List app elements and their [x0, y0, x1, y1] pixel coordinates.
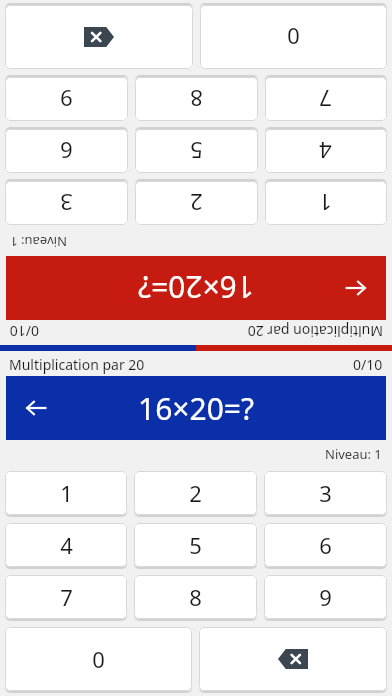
- staticText: 7: [60, 582, 73, 612]
- staticText: 6: [319, 530, 332, 560]
- button[interactable]: 5: [134, 523, 257, 567]
- button[interactable]: 0: [5, 627, 192, 691]
- button[interactable]: 1: [5, 471, 127, 515]
- staticText: 3: [60, 188, 73, 218]
- staticText: 9: [319, 582, 332, 612]
- button[interactable]: 5: [135, 129, 258, 173]
- button[interactable]: 2: [134, 471, 257, 515]
- other: Backspace: [5, 3, 193, 69]
- staticText: 8: [189, 582, 202, 612]
- button[interactable]: 3: [264, 471, 387, 515]
- staticText: 1: [60, 478, 73, 508]
- button[interactable]: [5, 5, 193, 69]
- staticText: 4: [319, 136, 332, 166]
- staticText: 2: [189, 478, 202, 508]
- button[interactable]: 0: [200, 5, 387, 69]
- button[interactable]: 8: [134, 575, 257, 619]
- button[interactable]: 7: [265, 77, 387, 121]
- staticText: Multiplication par 20: [9, 355, 145, 374]
- staticText: 7: [319, 84, 332, 114]
- button[interactable]: 1: [265, 181, 387, 225]
- staticText: 4: [60, 530, 73, 560]
- staticText: 2: [190, 188, 203, 218]
- button[interactable]: Back: [16, 388, 56, 428]
- staticText: 0: [287, 22, 300, 52]
- staticText: 6: [60, 136, 73, 166]
- button[interactable]: [199, 627, 387, 691]
- staticText: 0/10: [353, 355, 383, 374]
- staticText: 8: [190, 84, 203, 114]
- button[interactable]: 2: [135, 181, 258, 225]
- button[interactable]: 7: [5, 575, 127, 619]
- staticText: 3: [319, 478, 332, 508]
- button[interactable]: 6: [264, 523, 387, 567]
- button[interactable]: 16×20=?: [6, 376, 386, 440]
- staticText: 5: [189, 530, 202, 560]
- button[interactable]: 6: [5, 129, 128, 173]
- other: Backspace: [199, 627, 387, 693]
- staticText: 0/10: [9, 322, 39, 341]
- button[interactable]: 9: [5, 77, 128, 121]
- button[interactable]: 4: [265, 129, 387, 173]
- staticText: Multiplication par 20: [247, 322, 383, 341]
- button[interactable]: 9: [264, 575, 387, 619]
- staticText: 1: [319, 188, 332, 218]
- staticText: 0: [92, 644, 105, 674]
- button[interactable]: 8: [135, 77, 258, 121]
- staticText: 9: [60, 84, 73, 114]
- button[interactable]: 3: [5, 181, 128, 225]
- staticText: 16×20=?: [138, 267, 254, 308]
- staticText: 5: [190, 136, 203, 166]
- staticText: Niveau: 1: [325, 445, 382, 463]
- staticText: 16×20=?: [138, 388, 254, 429]
- button[interactable]: Back: [336, 268, 376, 308]
- button[interactable]: 16×20=?: [6, 256, 386, 320]
- button[interactable]: 4: [5, 523, 127, 567]
- staticText: Niveau: 1: [10, 233, 67, 251]
